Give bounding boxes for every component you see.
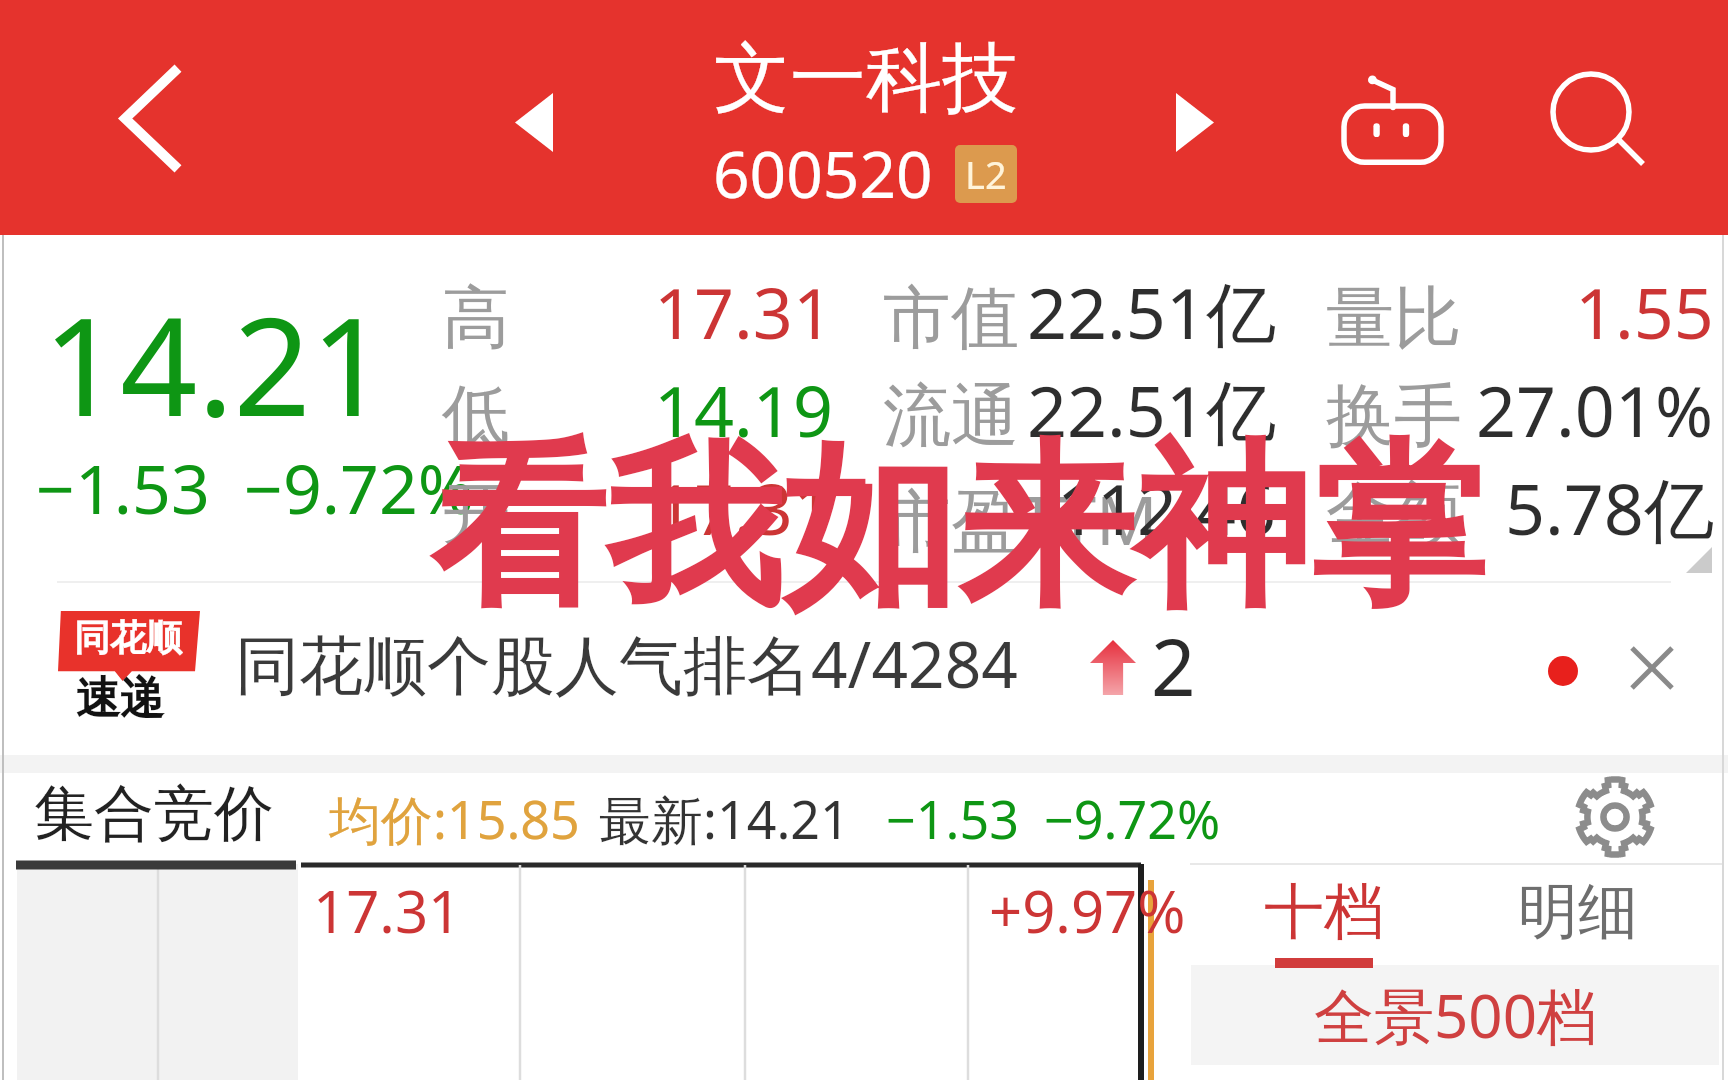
- button[interactable]: Previous stock: [484, 82, 584, 162]
- staticText: L2: [965, 148, 1007, 200]
- staticText: 换手: [1326, 374, 1462, 460]
- button[interactable]: 全景500档: [1191, 965, 1719, 1065]
- staticText: 流通: [883, 374, 1019, 460]
- staticText: 17.31: [654, 264, 833, 359]
- staticText: 17.31: [654, 460, 833, 555]
- staticText: 17.31: [313, 871, 462, 950]
- staticText: −1.53: [36, 441, 210, 534]
- staticText: 22.51亿: [1027, 362, 1276, 458]
- button[interactable]: Settings: [1560, 767, 1670, 867]
- staticText: 开: [442, 472, 510, 558]
- staticText: −1.53: [886, 783, 1019, 854]
- button[interactable]: 文一科技: [714, 31, 1018, 127]
- staticText: 均价:15.85: [329, 783, 580, 854]
- staticText: 金额: [1326, 472, 1462, 558]
- staticText: 十档: [1264, 874, 1384, 950]
- staticText: 最新:14.21: [599, 783, 850, 854]
- staticText: 全景500档: [1314, 974, 1597, 1056]
- staticText: 112.46: [1057, 460, 1276, 555]
- staticText: 速递: [76, 671, 164, 726]
- staticText: +9.97%: [989, 871, 1186, 950]
- button[interactable]: 明细: [1478, 874, 1678, 962]
- button[interactable]: AI assistant: [1320, 55, 1465, 185]
- staticText: −9.72%: [1044, 783, 1221, 854]
- staticText: 市值: [883, 276, 1019, 362]
- button[interactable]: 同花顺: [0, 600, 1728, 740]
- button[interactable]: 600520: [713, 130, 1017, 217]
- staticText: −9.72%: [244, 441, 475, 534]
- staticText: 1.55: [1575, 264, 1714, 359]
- staticText: 600520: [713, 130, 933, 217]
- button[interactable]: 十档: [1224, 874, 1424, 968]
- staticText: 市盈TTM: [883, 472, 1158, 565]
- staticText: 22.51亿: [1027, 264, 1276, 360]
- staticText: 2: [1151, 613, 1196, 719]
- staticText: 同花顺个股人气排名4/4284: [235, 620, 1018, 707]
- staticText: 5.78亿: [1505, 460, 1714, 556]
- button[interactable]: Search: [1530, 55, 1665, 185]
- staticText: 集合竞价: [34, 776, 274, 852]
- staticText: 14.19: [654, 362, 833, 457]
- staticText: 27.01%: [1476, 362, 1714, 457]
- staticText: 同花顺: [74, 615, 182, 660]
- staticText: 高: [442, 276, 510, 362]
- button[interactable]: Back: [91, 48, 211, 188]
- staticText: 明细: [1518, 874, 1638, 950]
- staticText: 低: [442, 374, 510, 460]
- staticText: 看我如来神掌: [430, 418, 1486, 640]
- staticText: 14.21: [43, 272, 389, 456]
- staticText: 量比: [1326, 276, 1462, 362]
- button[interactable]: Next stock: [1145, 82, 1245, 162]
- button[interactable]: Close: [1614, 630, 1689, 705]
